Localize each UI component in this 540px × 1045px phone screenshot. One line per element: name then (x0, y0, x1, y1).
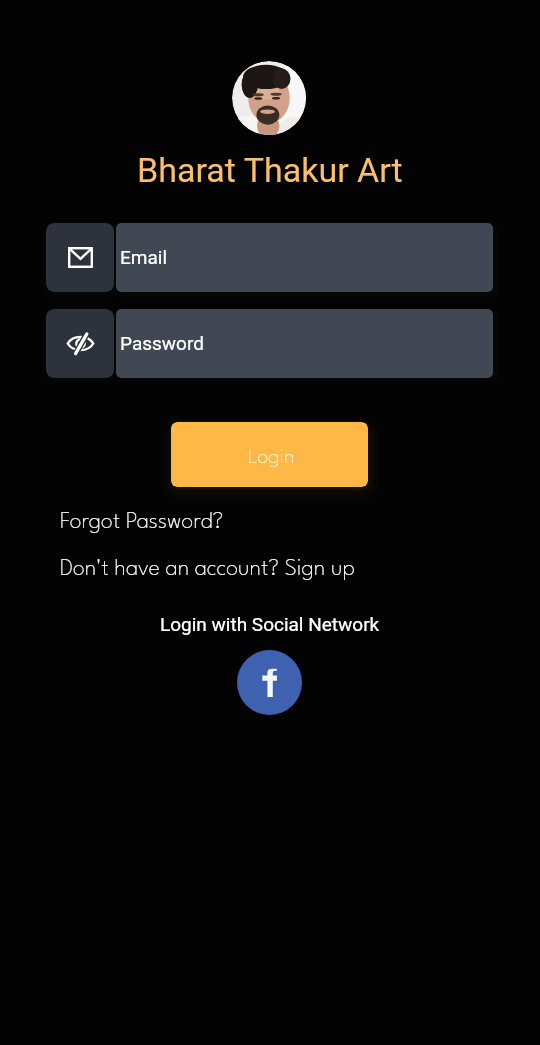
button[interactable]: Login with Facebook (237, 650, 302, 715)
staticText: Bharat Thakur Art (137, 150, 403, 190)
button[interactable]: Login (171, 422, 368, 487)
staticText: Don't have an account? Sign up (60, 558, 355, 580)
button[interactable]: Password (46, 309, 493, 378)
button[interactable]: Don't have an account? Sign up (60, 558, 355, 580)
button[interactable]: Email (46, 223, 493, 292)
staticText: Login with Social Network (160, 613, 380, 635)
staticText: Email (120, 246, 168, 268)
staticText: Login (248, 448, 295, 468)
staticText: Forgot Password? (60, 511, 224, 533)
button[interactable]: Forgot Password? (60, 511, 224, 533)
staticText: Password (120, 332, 204, 354)
